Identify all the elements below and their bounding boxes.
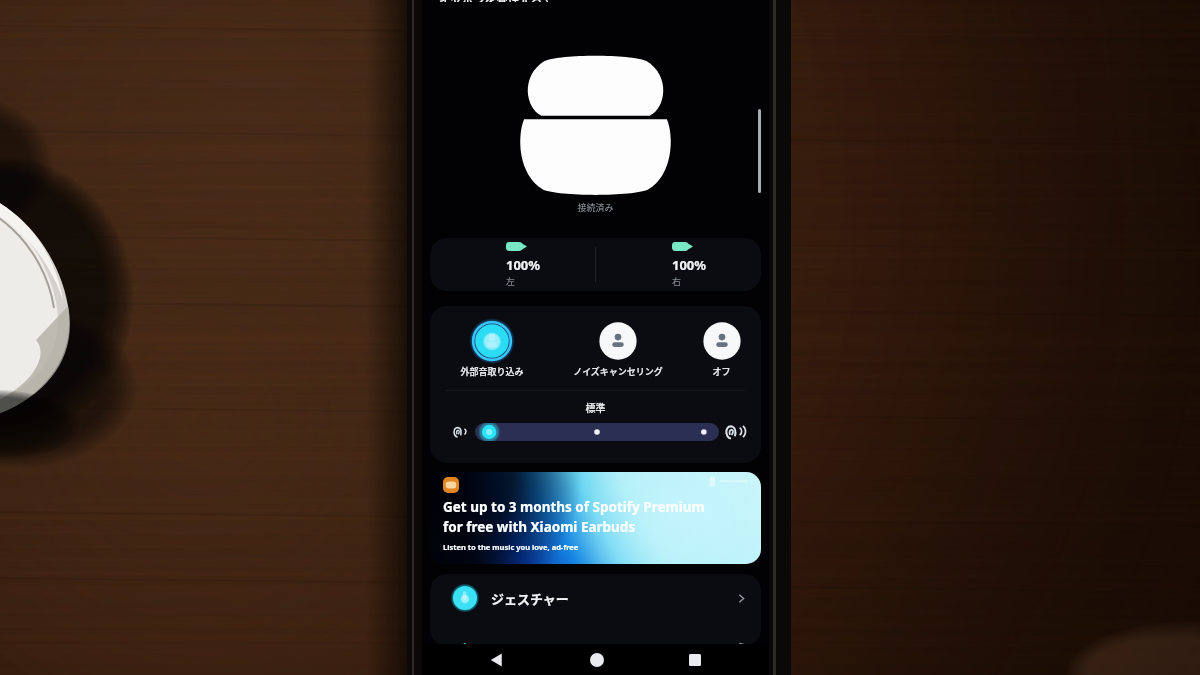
staticText: 標準 (430, 400, 761, 414)
staticText: 接続済み (422, 201, 769, 214)
staticText: 100% (506, 256, 541, 274)
staticText: Get up to 3 months of Spotify Premium (443, 498, 705, 516)
button[interactable]: 100% (596, 238, 761, 291)
button[interactable]: サウンド (430, 643, 761, 646)
button[interactable]: Home (581, 644, 613, 675)
staticText: Listen to the music you love, ad-free (443, 542, 579, 552)
button[interactable]: イヤホンを管理する › (439, 0, 549, 2)
button[interactable]: ノイズキャンセリング (553, 318, 682, 378)
staticText: for free with Xiaomi Earbuds (443, 518, 636, 536)
button[interactable]: オフ (682, 318, 761, 378)
button[interactable]: Get up to 3 months of Spotify Premium (430, 472, 761, 564)
button[interactable]: ジェスチャー (430, 576, 761, 620)
staticText: 右 (672, 275, 682, 288)
staticText: サウンド (491, 643, 544, 646)
button[interactable] (475, 423, 719, 441)
staticText: オフ (712, 365, 731, 378)
button[interactable]: Back (481, 644, 513, 675)
staticText: 100% (672, 256, 707, 274)
staticText: 左 (506, 275, 516, 288)
staticText: ジェスチャー (491, 589, 569, 608)
staticText: ノイズキャンセリング (573, 365, 663, 378)
button[interactable]: 100% (430, 238, 595, 291)
button[interactable]: 外部音取り込み (430, 318, 553, 378)
staticText: 外部音取り込み (460, 365, 524, 378)
button[interactable]: Recent apps (679, 644, 711, 675)
